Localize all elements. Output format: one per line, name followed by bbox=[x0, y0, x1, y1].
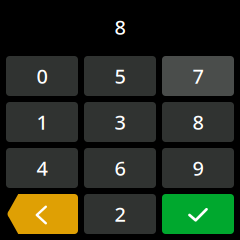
button[interactable]: 5 bbox=[84, 56, 156, 96]
button[interactable]: 9 bbox=[162, 148, 234, 188]
button[interactable]: 1 bbox=[6, 102, 78, 142]
staticText: 8 bbox=[114, 14, 125, 40]
staticText: 7 bbox=[192, 63, 203, 89]
staticText: 0 bbox=[36, 63, 47, 89]
button[interactable]: 3 bbox=[84, 102, 156, 142]
staticText: 2 bbox=[114, 201, 125, 227]
staticText: 8 bbox=[192, 109, 203, 135]
staticText: 4 bbox=[36, 155, 47, 181]
button[interactable]: 2 bbox=[84, 194, 156, 234]
staticText: 3 bbox=[114, 109, 125, 135]
button[interactable]: Confirm bbox=[162, 194, 234, 234]
button[interactable]: 4 bbox=[6, 148, 78, 188]
staticText: 5 bbox=[114, 63, 125, 89]
staticText: 9 bbox=[192, 155, 203, 181]
button[interactable]: 7 bbox=[162, 56, 234, 96]
button[interactable]: 0 bbox=[6, 56, 78, 96]
staticText: 1 bbox=[36, 109, 47, 135]
button[interactable]: 6 bbox=[84, 148, 156, 188]
staticText: 6 bbox=[114, 155, 125, 181]
button[interactable]: Delete bbox=[6, 194, 78, 234]
button[interactable]: 8 bbox=[162, 102, 234, 142]
